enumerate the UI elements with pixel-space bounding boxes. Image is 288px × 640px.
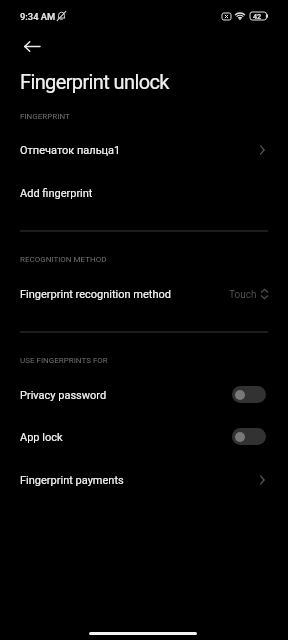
staticText: Fingerprint unlock (20, 70, 169, 93)
staticText: RECOGNITION METHOD (20, 255, 107, 264)
staticText: FINGERPRINT (20, 112, 70, 121)
staticText: USE FINGERPRINTS FOR (20, 356, 108, 365)
button[interactable]: Back (16, 31, 47, 62)
button[interactable]: Toggle (232, 386, 266, 403)
staticText: Add fingerprint (20, 187, 93, 200)
staticText: App lock (20, 431, 63, 444)
button[interactable]: Отпечаток пальца1 (0, 129, 288, 171)
staticText: Touch (229, 289, 257, 301)
staticText: 42 (253, 12, 262, 20)
staticText: 9:34 AM (20, 11, 56, 22)
staticText: Отпечаток пальца1 (20, 144, 121, 157)
staticText: Fingerprint recognition method (20, 288, 171, 301)
staticText: Privacy password (20, 389, 107, 402)
staticText: Fingerprint payments (20, 474, 124, 487)
button[interactable]: Toggle (232, 428, 266, 445)
button[interactable]: Fingerprint payments (0, 459, 288, 501)
button[interactable]: Privacy password (0, 374, 288, 416)
button[interactable]: Fingerprint recognition method (0, 273, 288, 315)
button[interactable]: App lock (0, 416, 288, 458)
button[interactable]: Add fingerprint (0, 172, 288, 214)
